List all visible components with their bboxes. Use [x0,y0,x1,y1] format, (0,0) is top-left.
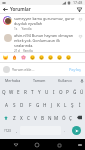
staticText: P [66,89,69,95]
button[interactable]: Ü [78,85,85,98]
button[interactable]: W [8,85,15,98]
button[interactable]: E [15,85,22,98]
button[interactable]: Emoji [37,53,46,62]
button[interactable]: Emoji [1,53,10,62]
staticText: Z [13,115,16,121]
staticText: Yorumlar [10,6,31,12]
staticText: B [41,115,44,121]
staticText: sumeyyee kamu gururumuz, gurur duyduk ey… [14,16,76,26]
staticText: 17:48 [73,0,83,5]
button[interactable]: F [26,98,34,111]
button[interactable]: Ğ [71,85,78,98]
button[interactable]: afsin.nl94 Bunun hayranı olmayan erkek y… [0,33,85,52]
staticText: Ç [69,115,72,121]
button[interactable]: Recent apps [54,140,64,150]
button[interactable]: O [57,85,64,98]
staticText: Merhaba [5,78,21,83]
button[interactable]: J [48,98,55,111]
staticText: O [59,89,63,95]
button[interactable]: H [41,98,48,111]
button[interactable]: Shift [0,111,11,124]
button[interactable]: Tamam [26,76,52,85]
staticText: V [34,115,37,121]
button[interactable]: Emoji [19,53,28,62]
button[interactable]: S [10,98,18,111]
button[interactable]: Z [11,111,18,124]
button[interactable]: P [64,85,71,98]
button[interactable]: Ç [67,111,74,124]
button[interactable]: Emoji [64,53,73,62]
button[interactable]: X [18,111,25,124]
staticText: . [64,128,66,133]
staticText: Ş [71,102,74,108]
button[interactable]: , [14,124,20,137]
button[interactable]: Ş [69,98,76,111]
staticText: J [51,102,53,108]
staticText: Y [38,89,41,95]
button[interactable]: Home [32,140,42,150]
staticText: 21d Yanıtla [14,49,33,52]
button[interactable]: C [25,111,32,124]
button[interactable]: İ [76,98,83,111]
button[interactable]: R [22,85,29,98]
staticText: K [57,102,60,108]
button[interactable]: sumeyyee kamu gururumuz, gurur duyduk ey… [0,16,85,31]
button[interactable]: D [18,98,26,111]
button[interactable]: Ö [60,111,67,124]
staticText: N [48,115,52,121]
staticText: D [20,102,24,108]
staticText: , [16,128,18,133]
button[interactable]: Emoji [10,53,19,62]
button[interactable]: Voice input [78,76,85,85]
button[interactable]: Kullanıcı [52,76,78,85]
staticText: A [5,102,8,108]
button[interactable]: I [50,85,57,98]
button[interactable]: Q [0,85,8,98]
staticText: X [20,115,23,121]
button[interactable]: G [34,98,41,111]
staticText: L [64,102,67,108]
staticText: G [36,102,40,108]
button[interactable]: Send [68,124,85,137]
button[interactable]: Y [36,85,43,98]
staticText: Kullanıcı [58,78,73,83]
button[interactable]: N [46,111,53,124]
button[interactable]: ?123 [0,124,14,137]
button[interactable]: L [62,98,69,111]
staticText: M [54,115,59,121]
staticText: U [45,89,49,95]
button[interactable]: K [55,98,62,111]
staticText: T [31,89,34,95]
button[interactable]: A [2,98,10,111]
button[interactable]: V [32,111,39,124]
staticText: E [17,89,20,95]
button[interactable]: Back [2,6,9,13]
button[interactable]: Back [11,140,21,150]
button[interactable]: Emoji [28,53,37,62]
button[interactable]: T [29,85,36,98]
staticText: Q [2,89,6,95]
staticText: F [29,102,32,108]
staticText: Tamam [33,78,46,83]
button[interactable]: Paylaş [67,66,83,73]
button[interactable]: Keyboard [76,141,84,149]
button[interactable]: Like [77,33,83,39]
staticText: R [24,89,27,95]
staticText: Yorum ekle... [12,67,35,72]
staticText: ?123 [4,129,11,133]
staticText: Ü [80,89,84,95]
button[interactable]: Share [75,5,83,13]
button[interactable]: Merhaba [0,76,26,85]
button[interactable]: Emoji [55,53,64,62]
button[interactable]: M [53,111,60,124]
staticText: W [9,89,14,95]
button[interactable]: B [39,111,46,124]
button[interactable]: Emoji [46,53,55,62]
staticText: Ö [62,115,66,121]
button[interactable]: Backspace [74,111,85,124]
button[interactable]: Like [77,16,83,22]
button[interactable]: U [43,85,50,98]
staticText: Paylaş [69,67,81,72]
